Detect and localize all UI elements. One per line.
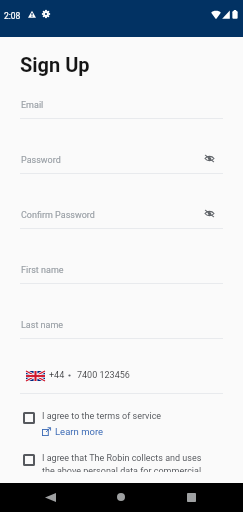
button[interactable]: Password — [0, 118, 243, 173]
button[interactable]: +44 — [0, 338, 243, 393]
button[interactable]: Toggle password visibility — [201, 205, 217, 221]
button[interactable]: Recent apps — [177, 483, 205, 511]
button[interactable]: Home — [107, 483, 135, 511]
button[interactable]: Last name — [0, 283, 243, 338]
button[interactable]: Checkbox — [23, 454, 35, 466]
staticText: 2:08 — [4, 11, 21, 21]
staticText: I agree that The Robin collects and uses… — [42, 453, 202, 472]
button[interactable]: Checkbox — [23, 412, 35, 424]
button[interactable]: First name — [0, 228, 243, 283]
staticText: First name — [21, 265, 64, 276]
staticText: Last name — [21, 320, 64, 331]
button[interactable]: Confirm Password — [0, 173, 243, 228]
staticText: I agree to the terms of service — [42, 411, 162, 422]
staticText: Password — [21, 155, 61, 166]
button[interactable]: Learn more — [42, 425, 104, 438]
staticText: +44 — [49, 370, 65, 381]
button[interactable]: Email — [0, 63, 243, 118]
staticText: Sign Up — [20, 53, 90, 76]
button[interactable]: Back — [36, 483, 64, 511]
staticText: 7400 123456 — [77, 370, 130, 381]
staticText: Email — [21, 100, 44, 111]
staticText: Confirm Password — [21, 210, 95, 221]
button[interactable]: Toggle password visibility — [201, 150, 217, 166]
staticText: Learn more — [55, 426, 104, 437]
